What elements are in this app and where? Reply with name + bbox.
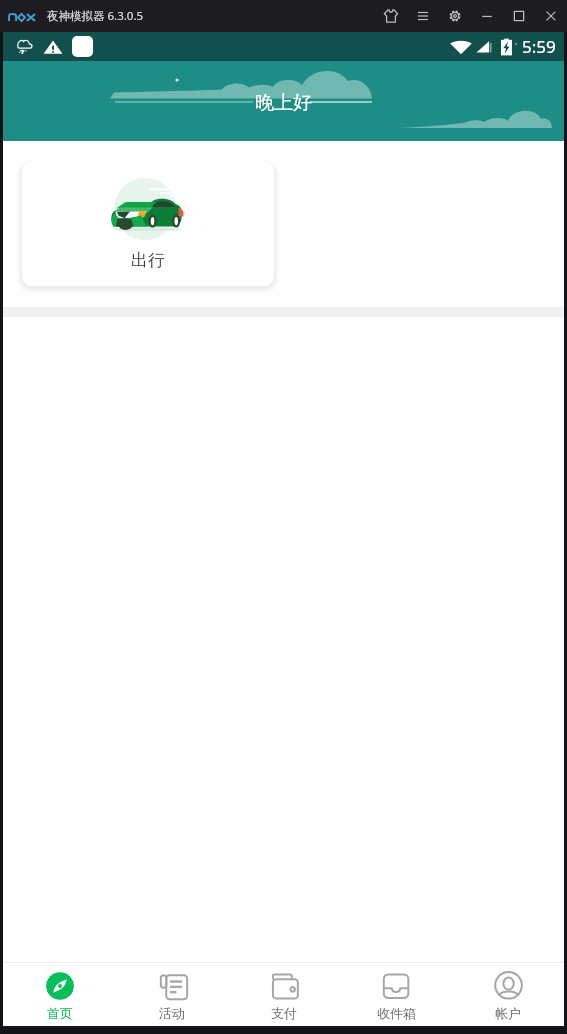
- staticText: 支付: [271, 1005, 297, 1021]
- staticText: 活动: [159, 1005, 185, 1021]
- button[interactable]: Minimize: [471, 0, 503, 32]
- staticText: 5:59: [522, 35, 556, 58]
- button[interactable]: Settings: [439, 0, 471, 32]
- button[interactable]: 帐户: [452, 972, 564, 1026]
- button[interactable]: Shirt: [375, 0, 407, 32]
- button[interactable]: 出行: [22, 161, 274, 286]
- staticText: 帐户: [495, 1005, 521, 1021]
- button[interactable]: 支付: [228, 972, 340, 1026]
- staticText: 出行: [131, 250, 165, 271]
- staticText: 夜神模拟器 6.3.0.5: [47, 8, 144, 24]
- button[interactable]: 收件箱: [340, 972, 452, 1026]
- button[interactable]: Maximize: [503, 0, 535, 32]
- staticText: 首页: [47, 1005, 73, 1021]
- staticText: 晚上好: [255, 91, 312, 115]
- button[interactable]: 首页: [3, 972, 116, 1026]
- staticText: 收件箱: [377, 1005, 416, 1021]
- button[interactable]: 活动: [116, 972, 228, 1026]
- button[interactable]: Close: [535, 0, 567, 32]
- button[interactable]: Menu: [407, 0, 439, 32]
